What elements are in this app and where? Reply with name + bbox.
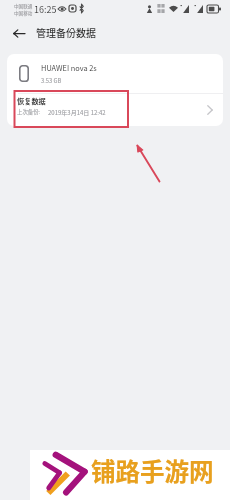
staticText: 上次备份: bbox=[17, 108, 41, 116]
button[interactable]: Back bbox=[8, 23, 29, 44]
staticText: 中国移动 bbox=[14, 10, 33, 17]
staticText: 管理备份数据 bbox=[36, 25, 96, 39]
staticText: 2019年3月14日 12:42 bbox=[48, 108, 106, 117]
staticText: 铺路手游网 bbox=[91, 453, 214, 488]
staticText: 恢复数据 bbox=[17, 96, 46, 106]
staticText: 中国联通 bbox=[14, 3, 33, 10]
button[interactable]: HUAWEI nova 2s bbox=[7, 54, 223, 93]
button[interactable]: 恢复数据 bbox=[7, 94, 223, 126]
staticText: HUAWEI nova 2s bbox=[41, 62, 97, 73]
staticText: 3.53 GB bbox=[41, 76, 62, 84]
staticText: 16:25 bbox=[34, 3, 57, 16]
